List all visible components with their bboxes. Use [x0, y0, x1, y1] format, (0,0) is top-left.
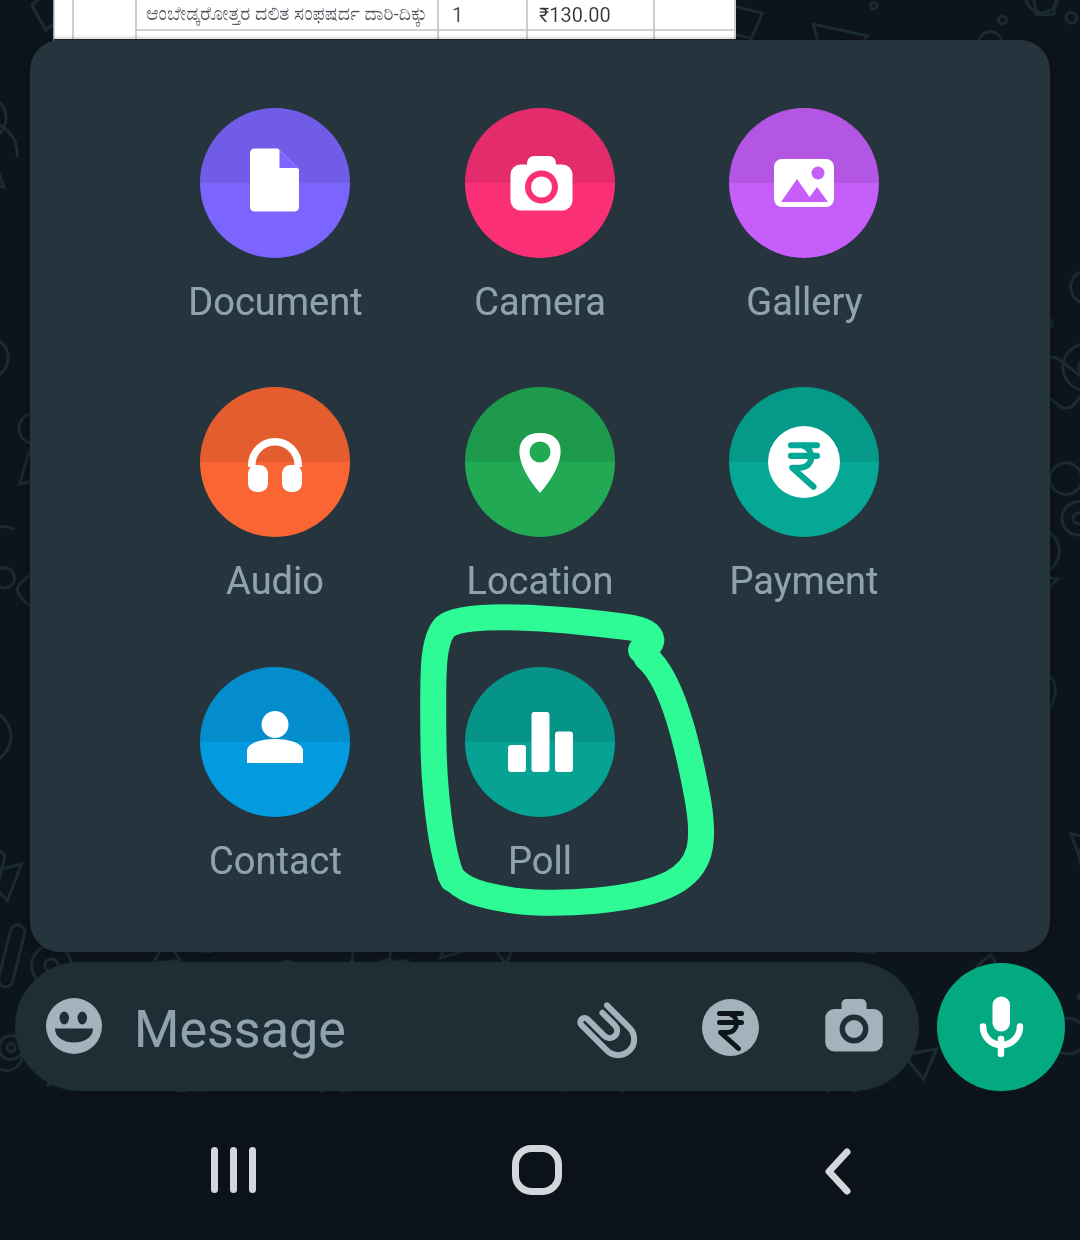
button[interactable]: Camera: [824, 998, 884, 1058]
button[interactable]: Document: [145, 108, 405, 325]
button[interactable]: Back: [778, 1111, 898, 1231]
staticText: Message: [134, 999, 346, 1060]
staticText: ₹130.00: [539, 3, 611, 26]
staticText: Payment: [729, 559, 879, 604]
button[interactable]: Location: [410, 387, 670, 604]
staticText: Gallery: [746, 280, 863, 325]
button[interactable]: Voice message: [937, 963, 1065, 1091]
button[interactable]: Gallery: [674, 108, 934, 325]
button[interactable]: Home: [477, 1110, 597, 1230]
staticText: Camera: [474, 280, 606, 325]
button[interactable]: Contact: [145, 667, 405, 884]
staticText: Audio: [226, 559, 324, 604]
staticText: Location: [466, 559, 614, 604]
button[interactable]: Attach: [575, 996, 633, 1054]
button[interactable]: Audio: [145, 387, 405, 604]
button[interactable]: Camera: [410, 108, 670, 325]
button[interactable]: Payment: [674, 387, 934, 604]
staticText: ಆಂಬೇಡ್ಕರೋತ್ತರ ದಲಿತ ಸಂಫಷರ್ದ ದಾರಿ-ದಿಕ್ಕು: [146, 2, 428, 24]
staticText: Contact: [209, 839, 342, 884]
staticText: Document: [188, 280, 363, 325]
button[interactable]: Payment: [702, 999, 759, 1056]
button[interactable]: Message: [15, 962, 919, 1091]
staticText: Poll: [508, 839, 572, 884]
button[interactable]: Poll: [410, 667, 670, 884]
button[interactable]: Recents: [175, 1110, 295, 1230]
staticText: 1: [452, 3, 464, 26]
